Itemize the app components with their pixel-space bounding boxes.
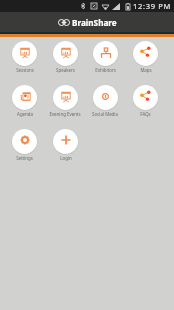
button[interactable]: Social Media (92, 85, 118, 117)
button[interactable]: Exhibitors (93, 41, 118, 73)
staticText: 12:39 PM (133, 1, 172, 11)
button[interactable]: Evening Events (49, 85, 81, 117)
button[interactable]: Agenda (12, 85, 37, 117)
button[interactable]: Sessions (12, 41, 37, 73)
staticText: Maps (140, 67, 152, 73)
staticText: Exhibitors (95, 67, 116, 73)
staticText: Speakers (56, 67, 75, 73)
button[interactable]: Speakers (53, 41, 78, 73)
staticText: Social Media (92, 111, 118, 117)
staticText: Settings (16, 155, 33, 161)
button[interactable]: Login (53, 129, 78, 161)
button[interactable]: Settings (12, 129, 37, 161)
staticText: Evening Events (49, 111, 81, 117)
staticText: Agenda (17, 111, 33, 117)
button[interactable]: FAQs (133, 85, 158, 117)
button[interactable]: Maps (133, 41, 158, 73)
staticText: FAQs (140, 111, 151, 117)
staticText: Login (60, 155, 72, 161)
staticText: BrainShare (72, 17, 117, 28)
staticText: Sessions (16, 67, 34, 73)
